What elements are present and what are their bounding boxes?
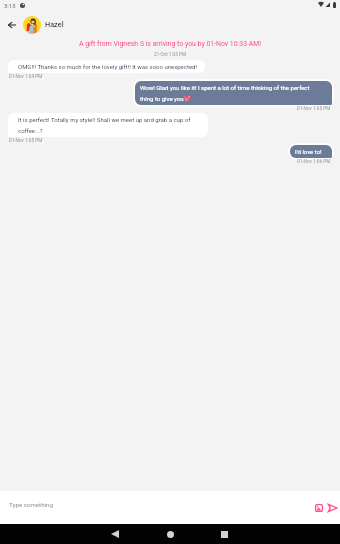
staticText: Hazel	[45, 20, 64, 29]
staticText: Type something	[9, 501, 53, 508]
staticText: 01-Nov 1:05 PM	[9, 138, 43, 144]
button[interactable]: It is perfect! Totally my style!! Shall …	[8, 113, 208, 137]
button[interactable]: Home	[156, 524, 184, 544]
button[interactable]: Attach image	[309, 498, 329, 518]
button[interactable]: Back	[2, 15, 21, 34]
staticText: I'd love to!	[295, 146, 322, 157]
button[interactable]: Recents	[210, 524, 238, 544]
staticText: It is perfect! Totally my style!! Shall …	[18, 114, 200, 136]
button[interactable]: Back	[101, 524, 129, 544]
button[interactable]: OMG!!! Thanks so much for the lovely gif…	[8, 60, 205, 73]
staticText: 21-Oct 1:03 PM	[0, 52, 340, 58]
staticText: Wow! Glad you like it! I spent a lot of …	[140, 82, 322, 104]
staticText: 01-Nov 1:05 PM	[297, 106, 331, 112]
staticText: 01-Nov 1:04 PM	[9, 74, 43, 80]
button[interactable]: I'd love to!	[290, 145, 332, 158]
staticText: OMG!!! Thanks so much for the lovely gif…	[18, 61, 197, 72]
button[interactable]: Wow! Glad you like it! I spent a lot of …	[135, 81, 332, 105]
staticText: 3:13	[4, 2, 16, 9]
staticText: 01-Nov 1:06 PM	[297, 159, 331, 165]
button[interactable]: Send	[322, 498, 340, 518]
staticText: A gift from Vignesh S is arriving to you…	[0, 40, 340, 48]
